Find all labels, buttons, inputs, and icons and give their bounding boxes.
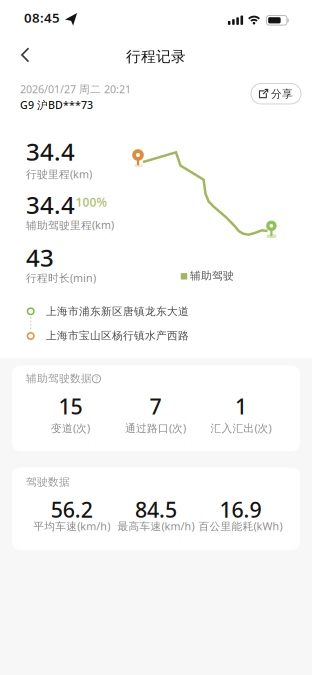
- staticText: 56.2: [51, 495, 93, 524]
- staticText: 变道(次): [51, 421, 90, 435]
- staticText: 汇入汇出(次): [210, 421, 271, 435]
- staticText: 上海市浦东新区唐镇龙东大道: [46, 305, 189, 318]
- staticText: 平均车速(km/h): [33, 519, 110, 533]
- staticText: 上海市宝山区杨行镇水产西路: [46, 329, 189, 342]
- staticText: ?: [95, 374, 98, 383]
- button[interactable]: 分享: [251, 83, 301, 104]
- staticText: 16.9: [219, 495, 261, 524]
- staticText: 辅助驾驶里程(km): [26, 218, 114, 232]
- staticText: 行驶里程(km): [26, 167, 92, 181]
- staticText: 分享: [271, 87, 293, 100]
- staticText: 34.4: [26, 136, 75, 167]
- staticText: 行程记录: [126, 47, 186, 65]
- staticText: 百公里能耗(kWh): [198, 519, 282, 533]
- staticText: G9 沪BD***73: [20, 98, 93, 112]
- staticText: 08:45: [24, 9, 60, 26]
- staticText: 辅助驾驶: [190, 269, 234, 282]
- staticText: 辅助驾驶数据: [26, 372, 92, 385]
- staticText: 34.4: [26, 189, 75, 221]
- button[interactable]: ?: [91, 374, 101, 384]
- staticText: 1: [235, 392, 247, 420]
- staticText: 43: [26, 242, 54, 273]
- staticText: 行程时长(min): [26, 271, 96, 285]
- staticText: 100%: [75, 194, 107, 210]
- staticText: 驾驶数据: [26, 475, 70, 488]
- staticText: 最高车速(km/h): [117, 519, 194, 533]
- staticText: 84.5: [135, 495, 177, 524]
- staticText: 通过路口(次): [125, 421, 186, 435]
- button[interactable]: [18, 47, 32, 63]
- staticText: 7: [149, 392, 161, 420]
- staticText: 2026/01/27 周二 20:21: [20, 82, 131, 96]
- staticText: 15: [59, 392, 83, 420]
